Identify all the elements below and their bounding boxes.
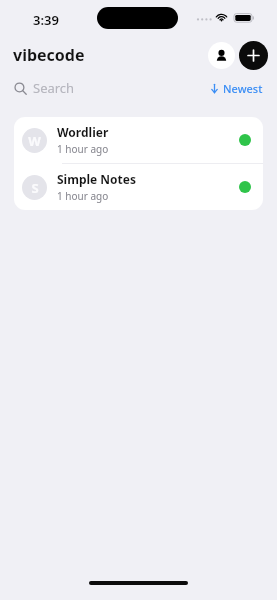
staticText: 1 hour ago — [57, 189, 109, 203]
staticText: 3:39 — [33, 11, 59, 29]
staticText: Wordlier — [57, 124, 109, 140]
button[interactable]: Search — [14, 74, 209, 102]
staticText: W — [28, 132, 41, 150]
button[interactable]: W — [14, 117, 263, 163]
staticText: vibecode — [13, 44, 85, 66]
button[interactable]: S — [14, 164, 263, 210]
staticText: Search — [33, 79, 75, 97]
staticText: Newest — [223, 81, 263, 96]
staticText: 1 hour ago — [57, 142, 109, 156]
button[interactable]: Profile — [208, 42, 235, 69]
staticText: S — [31, 179, 39, 197]
button[interactable]: Add — [239, 41, 268, 70]
staticText: Simple Notes — [57, 171, 136, 187]
button[interactable]: Newest — [209, 74, 263, 102]
